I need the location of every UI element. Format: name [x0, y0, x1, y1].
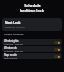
staticText: Next Lock [5, 21, 21, 25]
button[interactable]: Weeknights [2, 39, 62, 45]
button[interactable]: Weekends [2, 46, 62, 52]
staticText: Tonight at 10:30 PM [5, 26, 25, 29]
staticText: Weekends [4, 46, 17, 50]
staticText: 11:30 PM - 8:00 AM [4, 50, 23, 52]
staticText: bedtime lock [20, 8, 44, 13]
staticText: Schedule [24, 3, 41, 8]
staticText: Weekly schedule [4, 32, 64, 35]
staticText: Weeknights [4, 39, 19, 43]
staticText: Nap mode [4, 53, 17, 57]
button[interactable]: Next Lock [2, 18, 62, 31]
button[interactable]: Nap mode [2, 53, 62, 59]
staticText: Daily 2:00 PM [4, 57, 18, 59]
staticText: 10:30 PM - 7:00 AM [4, 43, 23, 45]
